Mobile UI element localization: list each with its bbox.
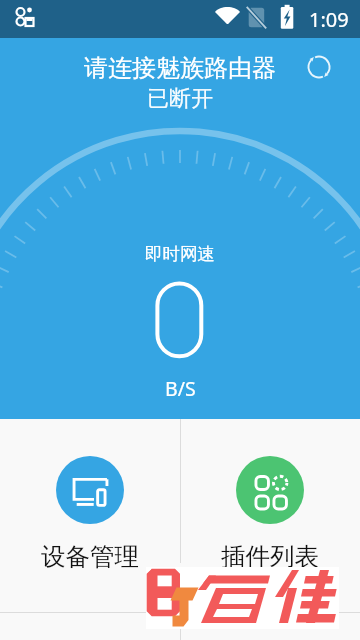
button[interactable]: 插件列表 (180, 419, 360, 612)
button[interactable] (0, 613, 180, 640)
staticText: 设备管理 (41, 541, 139, 572)
staticText: 请连接魅族路由器 (84, 53, 276, 83)
button[interactable]: Refresh (306, 54, 332, 80)
staticText: 已断开 (147, 85, 213, 113)
button[interactable]: 设备管理 (0, 419, 180, 612)
staticText: 即时网速 (145, 243, 215, 265)
button[interactable] (180, 613, 360, 640)
staticText: B/S (165, 375, 196, 402)
staticText: 插件列表 (221, 541, 319, 572)
staticText: 1:09 (309, 6, 349, 33)
